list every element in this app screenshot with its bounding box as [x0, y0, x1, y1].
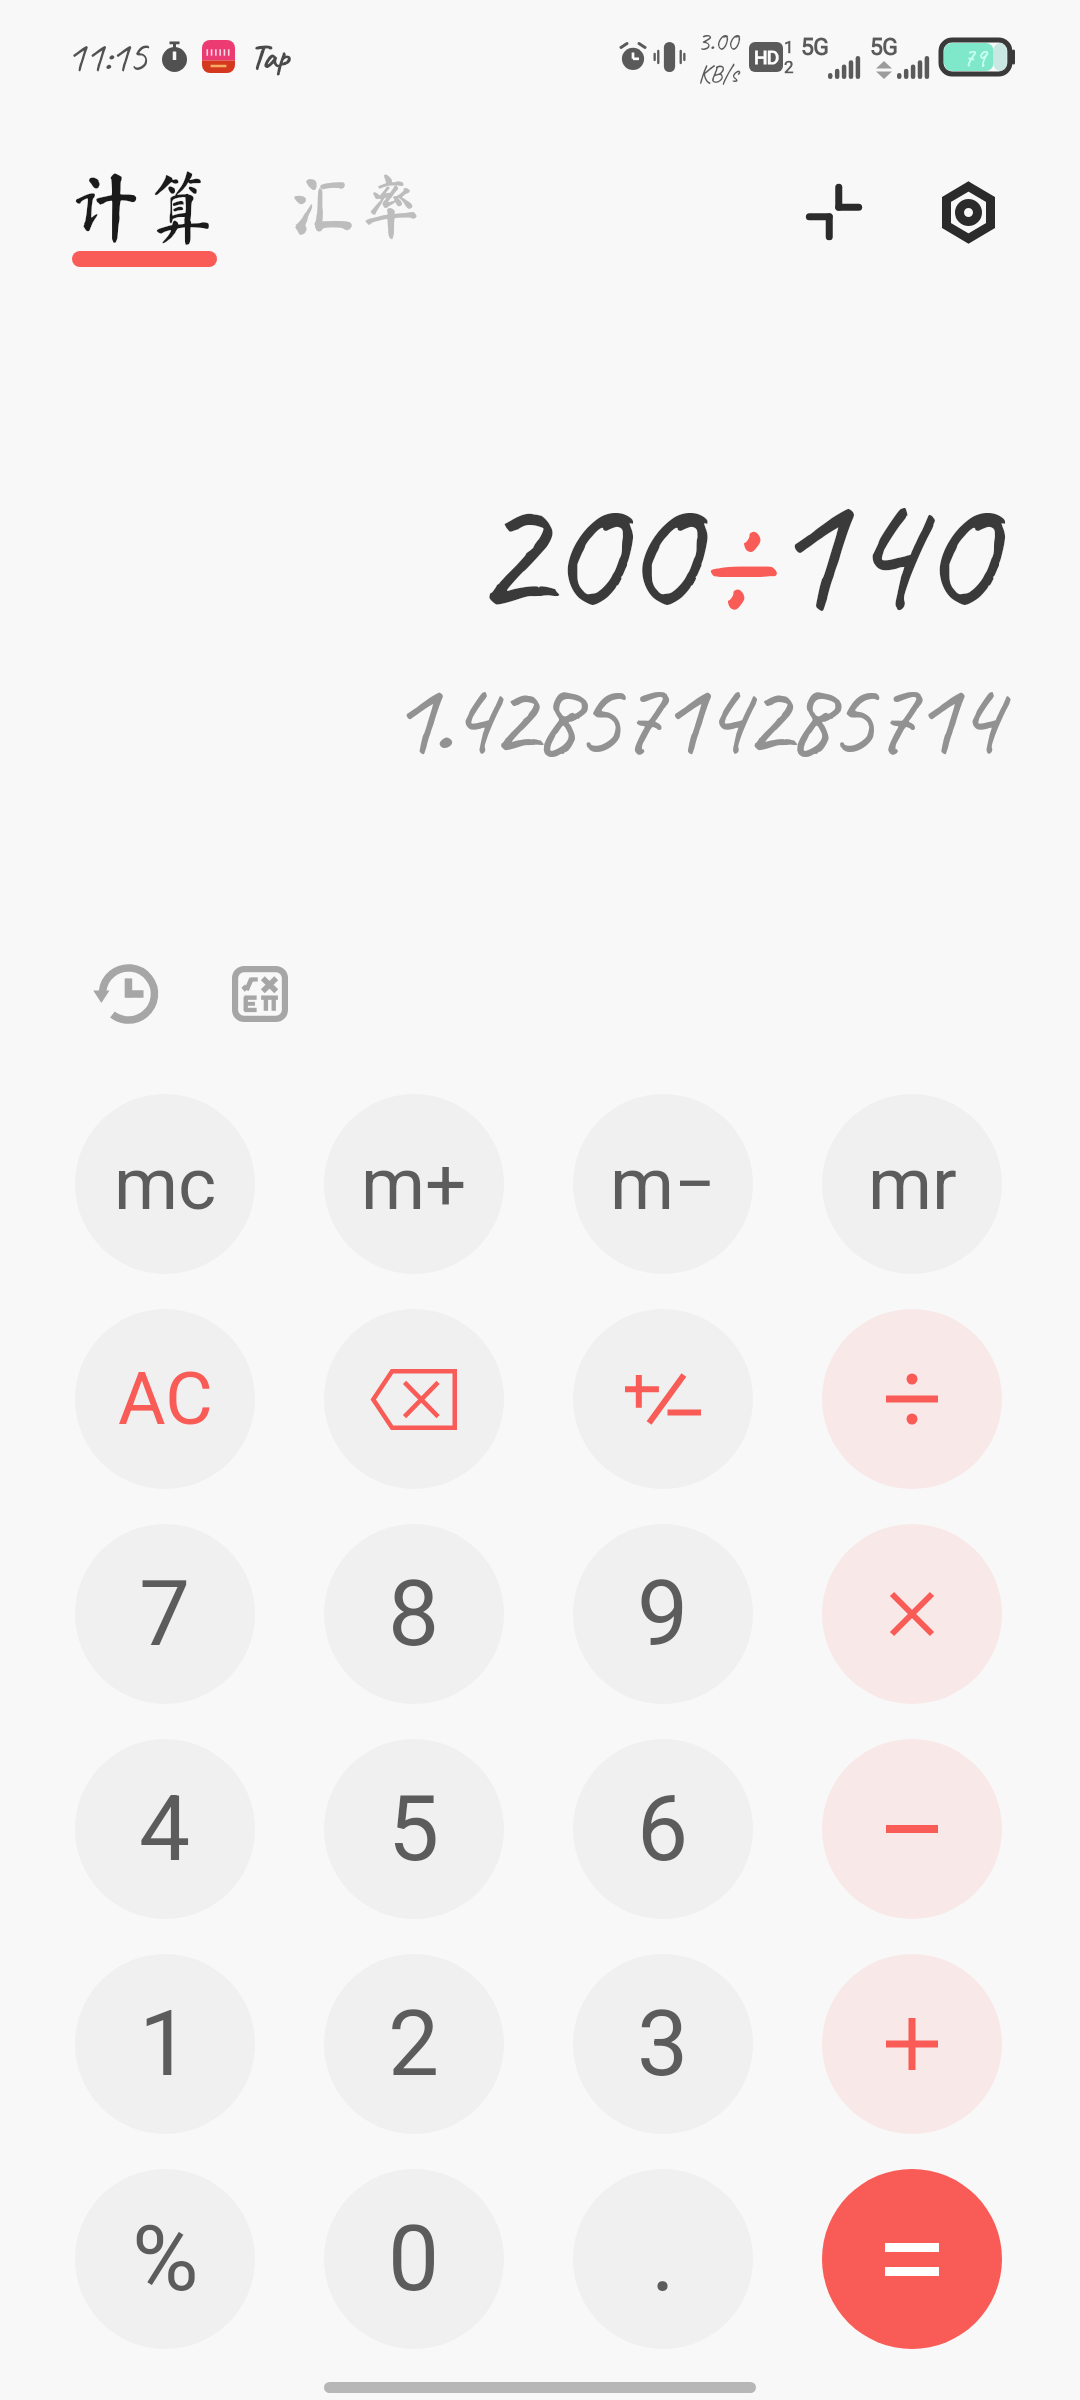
staticText: 5	[388, 1776, 440, 1883]
button[interactable]: Unit converter	[778, 156, 890, 268]
staticText: 5G	[801, 34, 828, 61]
staticText: mr	[868, 1141, 957, 1227]
button[interactable]: m−	[573, 1094, 753, 1274]
staticText: 79	[963, 41, 987, 74]
staticText: 2	[784, 57, 794, 77]
staticText: 1	[784, 37, 794, 57]
staticText: 3.00	[697, 23, 738, 58]
staticText: 5G	[870, 34, 897, 61]
staticText: 2	[388, 1991, 440, 2098]
staticText: 汇率	[289, 171, 426, 239]
button[interactable]: Equals	[822, 2169, 1002, 2349]
staticText: 1	[139, 1991, 191, 2098]
staticText: HD	[754, 46, 779, 68]
button[interactable]: AC	[75, 1309, 255, 1489]
button[interactable]: 8	[324, 1524, 504, 1704]
button[interactable]: mr	[822, 1094, 1002, 1274]
staticText: AC	[118, 1356, 213, 1442]
staticText: 3	[637, 1991, 689, 2098]
button[interactable]: 6	[573, 1739, 753, 1919]
button[interactable]: Multiply	[822, 1524, 1002, 1704]
staticText: 9	[637, 1561, 689, 1668]
button[interactable]: 5	[324, 1739, 504, 1919]
staticText: 0	[388, 2206, 440, 2313]
staticText: 1.4285714285714	[0, 648, 995, 785]
button[interactable]: Scientific mode	[204, 938, 316, 1050]
button[interactable]: Add	[822, 1954, 1002, 2134]
staticText: 8	[388, 1561, 440, 1668]
staticText: .	[651, 2206, 675, 2313]
button[interactable]: 0	[324, 2169, 504, 2349]
staticText: 11:15	[66, 29, 146, 84]
button[interactable]: Divide	[822, 1309, 1002, 1489]
staticText: mc	[114, 1141, 217, 1227]
button[interactable]: mc	[75, 1094, 255, 1274]
staticText: m+	[361, 1141, 467, 1227]
staticText: 6	[637, 1776, 689, 1883]
staticText: %	[132, 2206, 199, 2313]
button[interactable]: 计算	[60, 168, 228, 267]
button[interactable]: 1	[75, 1954, 255, 2134]
staticText: m−	[610, 1141, 716, 1227]
button[interactable]: .	[573, 2169, 753, 2349]
button[interactable]: Toggle sign	[573, 1309, 753, 1489]
button[interactable]: m+	[324, 1094, 504, 1274]
button[interactable]: 9	[573, 1524, 753, 1704]
staticText: 7	[139, 1561, 191, 1668]
staticText: 200÷140	[0, 437, 989, 663]
button[interactable]: Settings	[912, 156, 1024, 268]
staticText: 计算	[68, 168, 220, 244]
button[interactable]: Subtract	[822, 1739, 1002, 1919]
button[interactable]: 3	[573, 1954, 753, 2134]
button[interactable]: History	[67, 938, 179, 1050]
button[interactable]: 7	[75, 1524, 255, 1704]
button[interactable]: Delete	[324, 1309, 504, 1489]
staticText: Tap	[250, 35, 289, 78]
staticText: 4	[139, 1776, 191, 1883]
button[interactable]: 汇率	[281, 171, 434, 269]
button[interactable]: 4	[75, 1739, 255, 1919]
staticText: KB/s	[698, 58, 738, 90]
button[interactable]: 2	[324, 1954, 504, 2134]
button[interactable]: %	[75, 2169, 255, 2349]
